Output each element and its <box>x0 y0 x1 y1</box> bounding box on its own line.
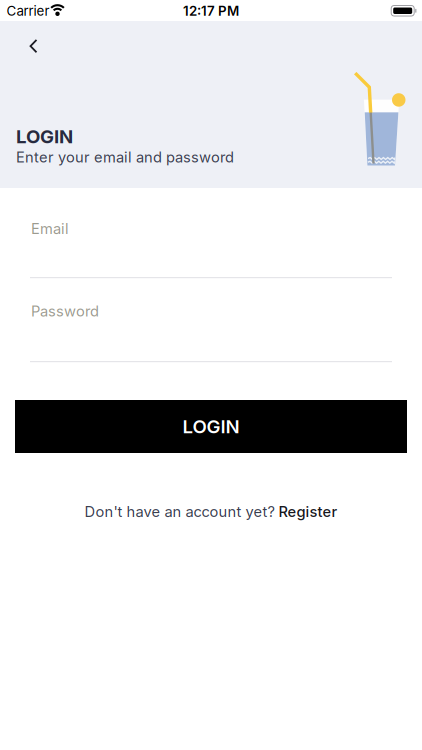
staticText: Carrier <box>6 3 49 19</box>
staticText: Enter your email and password <box>16 148 234 166</box>
textField[interactable]: Email <box>31 220 393 237</box>
staticText: LOGIN <box>182 415 239 437</box>
staticText: 12:17 PM <box>183 3 239 19</box>
button[interactable]: Back <box>17 27 49 65</box>
staticText: Password <box>31 302 99 320</box>
button[interactable]: Register <box>278 503 337 520</box>
staticText: LOGIN <box>16 125 73 147</box>
staticText: Email <box>31 220 69 237</box>
button[interactable]: LOGIN <box>15 400 407 453</box>
secureTextField[interactable]: Password <box>31 302 393 320</box>
staticText: Register <box>278 503 337 520</box>
staticText: Don't have an account yet? <box>84 503 274 520</box>
